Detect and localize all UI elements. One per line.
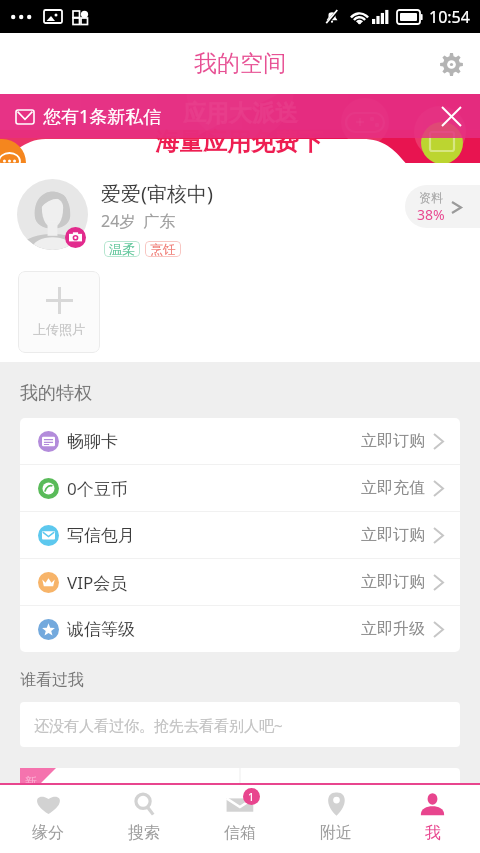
staticText: 搜索 [128, 823, 160, 843]
staticText: 立即订购 [361, 431, 425, 451]
button[interactable]: 还没有人看过你。抢先去看看别人吧~ [20, 702, 460, 747]
staticText: 立即订购 [361, 525, 425, 545]
button[interactable]: 我 [384, 785, 480, 853]
staticText: 谁看过我 [20, 670, 84, 690]
staticText: 温柔 [109, 241, 135, 257]
button[interactable]: 上传照片 [18, 271, 100, 353]
button[interactable]: 写信包月 [20, 512, 460, 558]
staticText: 立即订购 [361, 572, 425, 592]
button[interactable]: 资料 [405, 185, 480, 228]
staticText: 您有1条新私信 [43, 104, 162, 129]
staticText: 海量应用免费下 [155, 127, 323, 157]
button[interactable]: 畅聊卡 [20, 418, 460, 464]
button[interactable]: Settings [429, 42, 473, 86]
staticText: 24岁 广东 [101, 210, 176, 232]
staticText: 写信包月 [67, 525, 135, 546]
staticText: 我的空间 [194, 49, 286, 78]
staticText: 缘分 [32, 823, 64, 843]
staticText: 资料 [419, 190, 443, 205]
button[interactable]: 您有1条新私信 [0, 94, 480, 138]
staticText: 畅聊卡 [67, 431, 118, 452]
staticText: VIP会员 [67, 571, 128, 594]
staticText: 立即充值 [361, 478, 425, 498]
staticText: 附近 [320, 823, 352, 843]
staticText: 信箱 [224, 823, 256, 843]
button[interactable]: Change photo [65, 227, 86, 248]
button[interactable]: 搜索 [96, 785, 192, 853]
staticText: 10:54 [429, 6, 470, 28]
staticText: 烹饪 [150, 241, 176, 257]
staticText: 我 [425, 823, 441, 843]
staticText: 38% [417, 205, 445, 224]
button[interactable]: 诚信等级 [20, 606, 460, 652]
button[interactable]: Chat [0, 139, 26, 187]
button[interactable]: 缘分 [0, 785, 96, 853]
staticText: 诚信等级 [67, 619, 135, 640]
button[interactable]: VIP会员 [20, 559, 460, 605]
staticText: 0个豆币 [67, 477, 128, 500]
button[interactable]: 1 [192, 785, 288, 853]
staticText: 1 [248, 789, 255, 804]
staticText: 爱爱(审核中) [101, 180, 213, 207]
staticText: 我的特权 [20, 382, 92, 405]
staticText: 还没有人看过你。抢先去看看别人吧~ [34, 715, 283, 735]
button[interactable]: 附近 [288, 785, 384, 853]
button[interactable] [20, 768, 460, 808]
button[interactable]: 0个豆币 [20, 465, 460, 511]
button[interactable]: Close [434, 99, 468, 133]
staticText: 上传照片 [33, 321, 85, 337]
staticText: 新 [25, 774, 37, 789]
staticText: 应用大派送 [183, 99, 298, 128]
staticText: 立即升级 [361, 619, 425, 639]
